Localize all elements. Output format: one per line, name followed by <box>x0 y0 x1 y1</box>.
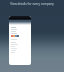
staticText: View details for every company <box>8 2 56 6</box>
